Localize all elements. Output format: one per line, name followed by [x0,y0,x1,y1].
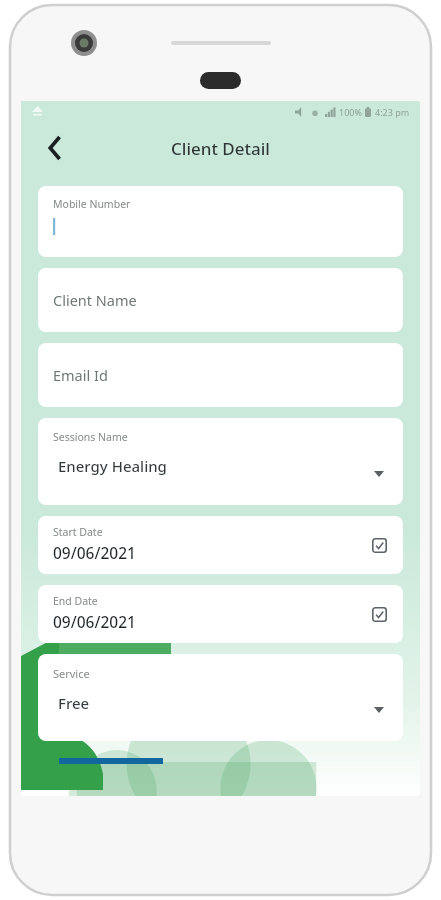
staticText: End Date [53,594,98,608]
staticText: 100% [339,106,362,118]
button[interactable]: Open dropdown [371,702,387,718]
staticText: 09/06/2021 [53,611,136,632]
button[interactable]: Back [35,128,75,168]
button[interactable]: Client Name [38,268,403,332]
other: Pick date [372,538,387,553]
button[interactable]: Email Id [38,343,403,407]
staticText: Client Detail [171,137,270,160]
staticText: Start Date [53,525,103,539]
staticText: 09/06/2021 [53,542,136,563]
button[interactable]: Mobile Number [38,186,403,257]
staticText: Email Id [53,365,108,385]
button[interactable]: End Date [38,585,403,643]
staticText: Sessions Name [53,430,128,444]
staticText: Client Name [53,290,137,310]
button[interactable]: Sessions Name [38,418,403,505]
other: Pick date [372,607,387,622]
button[interactable]: Service [38,654,403,741]
staticText: 4:23 pm [375,106,410,118]
button[interactable]: Start Date [38,516,403,574]
staticText: Service [53,666,90,681]
staticText: Energy Healing [58,456,167,476]
staticText: Mobile Number [53,197,131,211]
staticText: Free [58,693,90,713]
button[interactable]: Open dropdown [371,466,387,482]
